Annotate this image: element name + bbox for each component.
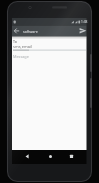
staticText: software [23,29,38,34]
button[interactable] [23,152,32,161]
staticText: sms,email [13,44,32,49]
button[interactable] [77,26,87,36]
staticText: Message [13,54,29,59]
button[interactable] [46,152,55,161]
staticText: 1:38 [81,20,88,24]
staticText: To [13,39,17,44]
button[interactable] [12,26,21,36]
button[interactable]: sms,email [12,43,87,51]
button[interactable] [67,152,76,161]
